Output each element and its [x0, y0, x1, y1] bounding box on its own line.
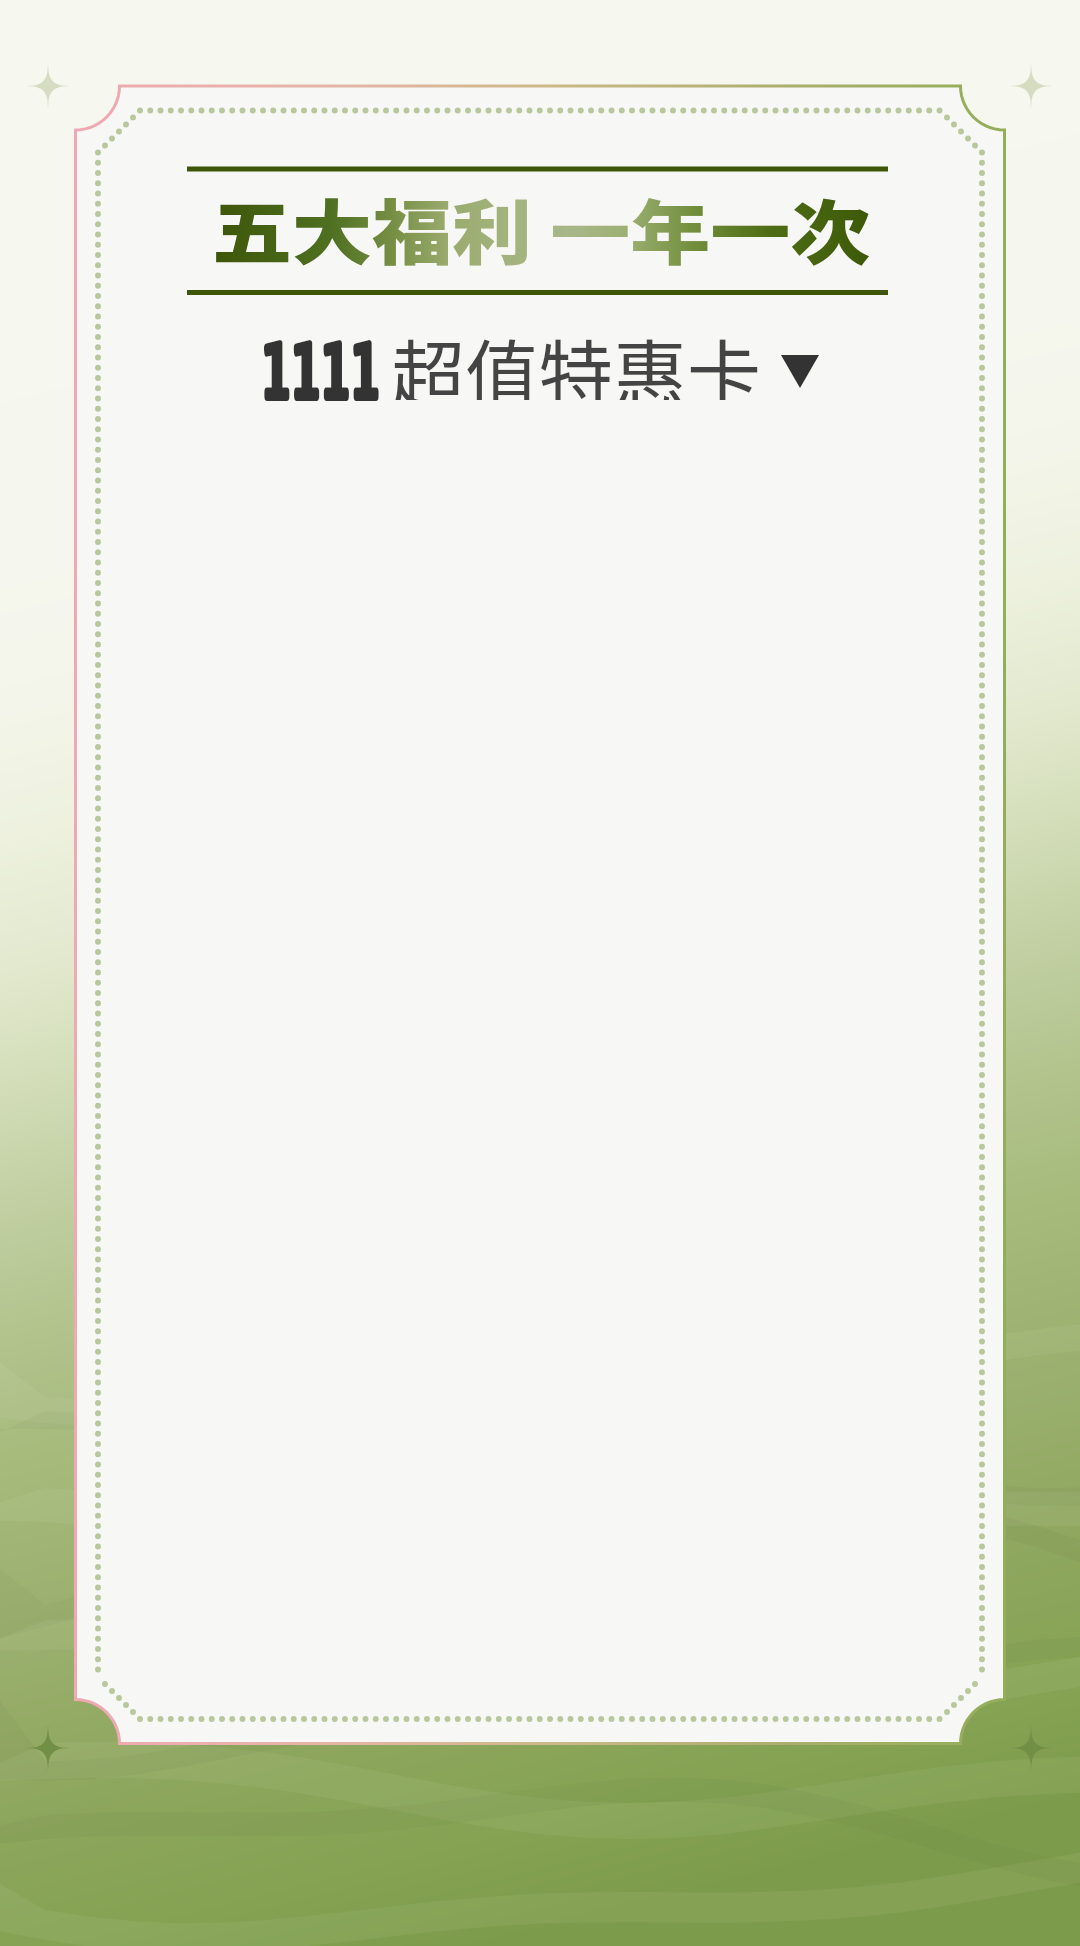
staticText: 1111	[262, 321, 381, 405]
button[interactable]: 1111 超值特惠卡，点击切换	[252, 317, 830, 401]
staticText: 五大福利 一年一次	[212, 177, 871, 279]
staticText: 超值特惠卡	[391, 316, 761, 400]
